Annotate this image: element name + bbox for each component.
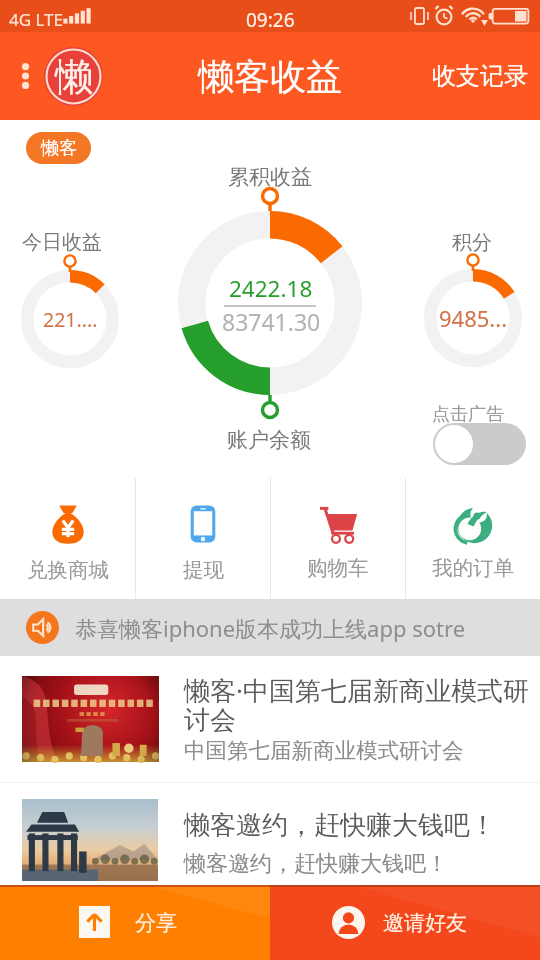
button[interactable]: 懒客 [26, 132, 91, 164]
staticText: 09:26 [246, 7, 295, 33]
button[interactable]: 我的订单 [406, 478, 540, 599]
staticText: 懒客邀约，赶快赚大钱吧！ [184, 809, 496, 842]
button[interactable]: Menu [11, 51, 40, 101]
staticText: 累积收益 [228, 164, 312, 190]
button[interactable]: 懒客邀约，赶快赚大钱吧！ [0, 783, 540, 890]
button[interactable]: 恭喜懒客iphone版本成功上线app sotre [0, 599, 540, 656]
staticText: 邀请好友 [383, 910, 467, 936]
staticText: 收支记录 [432, 61, 528, 91]
staticText: 懒客收益 [198, 54, 342, 99]
staticText: 懒客·中国第七届新商业模式研讨会 [184, 672, 529, 737]
staticText: 提现 [183, 557, 224, 583]
staticText: 2422.18 [229, 273, 313, 304]
staticText: 懒客邀约，赶快赚大钱吧！ [184, 850, 448, 878]
button[interactable]: 兑换商城 [0, 478, 135, 599]
staticText: 懒客 [41, 137, 77, 160]
button[interactable]: 购物车 [271, 478, 405, 599]
staticText: 兑换商城 [27, 557, 109, 583]
staticText: 购物车 [307, 555, 369, 581]
staticText: 我的订单 [432, 555, 514, 581]
staticText: 懒 [55, 53, 93, 101]
staticText: 4G LTE [9, 8, 63, 31]
staticText: 分享 [135, 910, 177, 936]
staticText: 今日收益 [22, 230, 102, 255]
staticText: 83741.30 [222, 306, 321, 337]
button[interactable]: Toggle ads [433, 423, 526, 465]
button[interactable]: 提现 [136, 478, 270, 599]
staticText: 点击广告 [432, 403, 504, 426]
button[interactable]: Logo [44, 47, 103, 106]
staticText: 221.... [43, 306, 98, 333]
button[interactable]: 懒客·中国第七届新商业模式研讨会 [0, 656, 540, 783]
button[interactable]: 邀请好友 [270, 885, 540, 960]
staticText: 9485... [439, 303, 508, 333]
button[interactable]: 收支记录 [420, 61, 540, 91]
staticText: 中国第七届新商业模式研讨会 [184, 737, 464, 764]
staticText: 恭喜懒客iphone版本成功上线app sotre [75, 613, 466, 643]
staticText: 积分 [452, 230, 492, 255]
staticText: 账户余额 [227, 427, 311, 453]
button[interactable]: 分享 [0, 885, 270, 960]
